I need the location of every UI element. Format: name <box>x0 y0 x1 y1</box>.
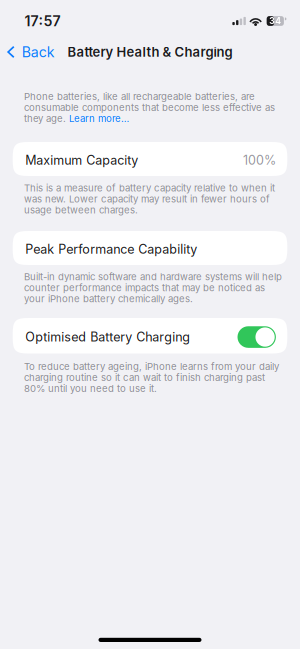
staticText: This is a measure of battery capacity re… <box>24 182 275 194</box>
staticText: Built-in dynamic software and hardware s… <box>24 271 282 283</box>
staticText: counter performance impacts that may be … <box>24 282 265 294</box>
button[interactable]: Peak Performance Capability <box>0 231 300 265</box>
staticText: Back <box>22 43 55 60</box>
staticText: they age. <box>24 113 66 124</box>
button[interactable]: Maximum Capacity <box>0 142 300 176</box>
staticText: your iPhone battery chemically ages. <box>24 293 193 305</box>
staticText: 100% <box>243 153 276 168</box>
staticText: Battery Health & Charging <box>67 44 232 60</box>
staticText: consumable components that become less e… <box>24 102 275 113</box>
staticText: Peak Performance Capability <box>25 242 197 257</box>
staticText: Learn more… <box>69 113 129 124</box>
staticText: was new. Lower capacity may result in fe… <box>24 193 270 205</box>
staticText: Phone batteries, like all rechargeable b… <box>24 91 255 102</box>
staticText: usage between charges. <box>24 204 138 216</box>
staticText: 34 <box>269 16 281 26</box>
staticText: 17:57 <box>24 12 60 29</box>
staticText: charging routine so it can wait to finis… <box>24 372 265 383</box>
button[interactable]: Optimised Battery Charging <box>0 318 300 353</box>
button[interactable]: Back <box>0 39 64 64</box>
staticText: Optimised Battery Charging <box>25 329 190 345</box>
staticText: Maximum Capacity <box>25 153 138 168</box>
staticText: To reduce battery ageing, iPhone learns … <box>24 361 279 372</box>
staticText: 80% until you need to use it. <box>24 383 157 394</box>
